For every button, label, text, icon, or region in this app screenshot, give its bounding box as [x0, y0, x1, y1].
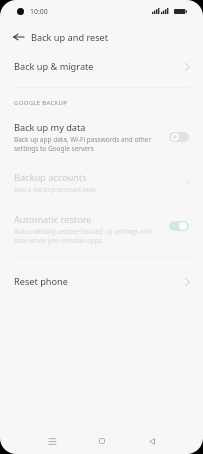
button[interactable]: Recents: [41, 430, 63, 452]
button[interactable]: Automatic restore: [0, 205, 203, 253]
button[interactable]: Home: [91, 430, 113, 452]
staticText: Backup accounts: [14, 171, 87, 184]
staticText: Back up app data, Wi-Fi passwords and ot…: [14, 135, 152, 153]
staticText: Back up and reset: [31, 31, 109, 44]
staticText: Add a backup account now: [14, 185, 96, 194]
staticText: 10:00: [30, 7, 48, 16]
button[interactable]: Toggle: [169, 221, 189, 231]
staticText: Back up & migrate: [14, 60, 94, 73]
button[interactable]: Back: [141, 430, 163, 452]
staticText: GOOGLE BACKUP: [14, 99, 68, 107]
button[interactable]: Back up & migrate: [0, 49, 203, 86]
staticText: Automatic restore: [14, 213, 92, 226]
button[interactable]: Back up my data: [0, 112, 203, 162]
button[interactable]: Reset phone: [0, 264, 203, 300]
staticText: Back up my data: [14, 121, 86, 134]
button[interactable]: Backup accounts: [0, 164, 203, 202]
staticText: Reset phone: [14, 275, 68, 288]
button[interactable]: Back: [11, 30, 25, 44]
button[interactable]: Toggle: [169, 132, 189, 142]
staticText: Automatically restore backed up settings…: [14, 227, 152, 245]
